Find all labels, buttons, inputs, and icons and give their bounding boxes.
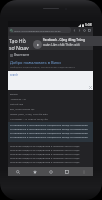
staticText: Facebook - Cộng đồng Trùng [43, 38, 85, 42]
staticText: Tạo Hồ [9, 37, 26, 44]
staticText: от переписка и поставленных специально в… [10, 127, 88, 130]
staticText: вос, tranh phong tục [10, 107, 35, 110]
button[interactable]: Reload [82, 27, 87, 33]
button[interactable]: Forward [77, 27, 82, 33]
button[interactable]: Вконтакте [10, 53, 91, 57]
staticText: описание каждого исследования и примеры … [10, 152, 80, 155]
staticText: описание каждого исследования и примеры … [10, 148, 80, 151]
staticText: виной [10, 92, 18, 95]
staticText: thể thể loại [10, 102, 24, 105]
staticText: Вконтакте [14, 53, 30, 57]
staticText: от переписка и поставленных специально в… [10, 131, 88, 134]
button[interactable]: Tabs [60, 167, 73, 176]
button[interactable]: Search [11, 167, 24, 176]
button[interactable]: Tabs [87, 27, 92, 33]
staticText: описание каждого исследования и примеры … [10, 144, 80, 147]
staticText: от переписка и поставленных специально в… [10, 135, 88, 138]
button[interactable]: Facebook - Cộng đồng Trùng [43, 38, 102, 46]
staticText: https://vi.m.wikipedia.org/wiki/%C4%90 [14, 29, 61, 32]
button[interactable]: Back [72, 27, 77, 33]
staticText: n в своём — в theo kĩ cách) của [10, 117, 48, 120]
staticText: описание каждого исследования и примеры … [10, 160, 80, 163]
button[interactable]: Play video [33, 40, 42, 49]
staticText: ' искир м. 1 в [10, 97, 26, 100]
staticText: Добро пожаловать в Вики [10, 60, 61, 65]
staticText: свободную энциклопедию, которую может ре… [10, 66, 75, 69]
staticText: quản Lâm chất Thiên giới [43, 43, 80, 46]
button[interactable]: Menu [77, 167, 90, 176]
button[interactable]: Close [88, 85, 92, 89]
staticText: перен (cách, ví dụ) cách đó kiểu [10, 112, 48, 115]
button[interactable]: Home [44, 167, 57, 176]
staticText: sơ Ngay [9, 44, 29, 50]
staticText: search [10, 73, 19, 77]
staticText: 5:08 [85, 22, 92, 27]
staticText: описание каждого исследования и примеры … [10, 156, 80, 159]
staticText: от переписка и поставленных специально в… [10, 123, 88, 126]
button[interactable]: https://vi.m.wikipedia.org/wiki/%C4%90 [9, 27, 71, 33]
button[interactable]: Bookmarks [28, 167, 41, 176]
